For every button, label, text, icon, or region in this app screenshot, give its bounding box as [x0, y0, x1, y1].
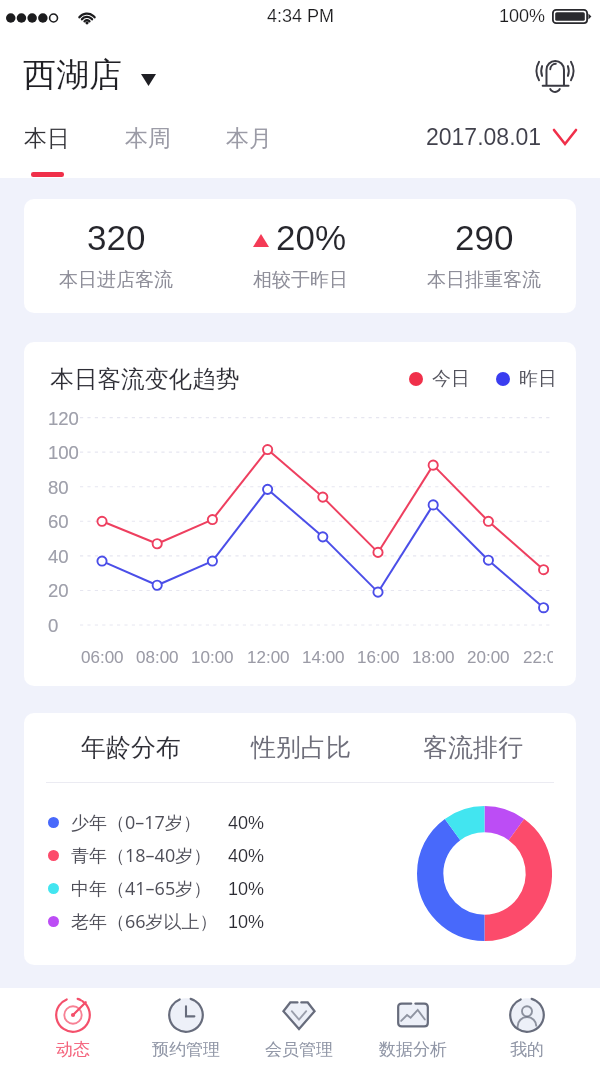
- staticText: 本月: [226, 124, 272, 153]
- staticText: 40%: [228, 846, 265, 866]
- staticText: 10%: [228, 879, 265, 899]
- button[interactable]: 2017.08.01: [426, 124, 576, 150]
- button[interactable]: 西湖店: [23, 54, 156, 96]
- staticText: 120: [48, 408, 79, 429]
- staticText: 22:00: [523, 648, 553, 667]
- staticText: 14:00: [302, 648, 345, 667]
- staticText: 相较于昨日: [253, 268, 348, 292]
- staticText: 会员管理: [265, 1039, 333, 1060]
- staticText: 少年（0–17岁）: [71, 810, 201, 835]
- staticText: 0: [48, 615, 59, 636]
- button[interactable]: 290: [392, 199, 576, 313]
- button[interactable]: 320: [24, 199, 208, 313]
- staticText: 今日: [432, 367, 470, 391]
- staticText: 08:00: [136, 648, 179, 667]
- staticText: 西湖店: [23, 54, 122, 96]
- staticText: 青年（18–40岁）: [71, 843, 212, 868]
- staticText: 昨日: [519, 367, 557, 391]
- button[interactable]: 客流排行: [405, 727, 541, 767]
- staticText: 16:00: [357, 648, 400, 667]
- button[interactable]: 本月: [226, 124, 272, 177]
- staticText: 18:00: [412, 648, 455, 667]
- staticText: 100: [48, 442, 79, 463]
- staticText: 320: [87, 218, 146, 257]
- staticText: 性别占比: [251, 732, 351, 763]
- staticText: 我的: [510, 1039, 544, 1060]
- staticText: 年龄分布: [81, 732, 181, 763]
- staticText: 12:00: [247, 648, 290, 667]
- staticText: 10:00: [191, 648, 234, 667]
- button[interactable]: 我的: [470, 988, 584, 1067]
- staticText: 06:00: [81, 648, 124, 667]
- button[interactable]: 20%: [208, 199, 392, 313]
- staticText: 数据分析: [379, 1039, 447, 1060]
- staticText: 动态: [56, 1039, 90, 1060]
- staticText: 本日客流变化趋势: [50, 364, 240, 394]
- staticText: 10%: [228, 912, 265, 932]
- staticText: 290: [455, 218, 514, 257]
- staticText: 预约管理: [152, 1039, 220, 1060]
- staticText: 2017.08.01: [426, 124, 542, 150]
- staticText: 本周: [125, 124, 171, 153]
- staticText: 本日进店客流: [59, 268, 173, 292]
- staticText: 20%: [276, 218, 347, 257]
- staticText: 40: [48, 546, 69, 567]
- staticText: 客流排行: [423, 732, 523, 763]
- staticText: 老年（66岁以上）: [71, 909, 218, 934]
- staticText: 中年（41–65岁）: [71, 876, 212, 901]
- staticText: 本日: [24, 124, 70, 153]
- staticText: 20:00: [467, 648, 510, 667]
- button[interactable]: 预约管理: [129, 988, 242, 1067]
- button[interactable]: 本日: [24, 124, 70, 177]
- button[interactable]: 会员管理: [242, 988, 356, 1067]
- button[interactable]: 年龄分布: [63, 727, 199, 767]
- button[interactable]: 本周: [125, 124, 171, 177]
- button[interactable]: Notifications: [528, 44, 582, 98]
- button[interactable]: 性别占比: [233, 727, 369, 767]
- staticText: 本日排重客流: [427, 268, 541, 292]
- staticText: 100%: [499, 6, 546, 26]
- staticText: 60: [48, 511, 69, 532]
- staticText: 4:34 PM: [267, 6, 335, 26]
- staticText: 80: [48, 477, 69, 498]
- button[interactable]: 数据分析: [356, 988, 470, 1067]
- button[interactable]: 动态: [16, 988, 129, 1067]
- staticText: 40%: [228, 813, 265, 833]
- staticText: 20: [48, 580, 69, 601]
